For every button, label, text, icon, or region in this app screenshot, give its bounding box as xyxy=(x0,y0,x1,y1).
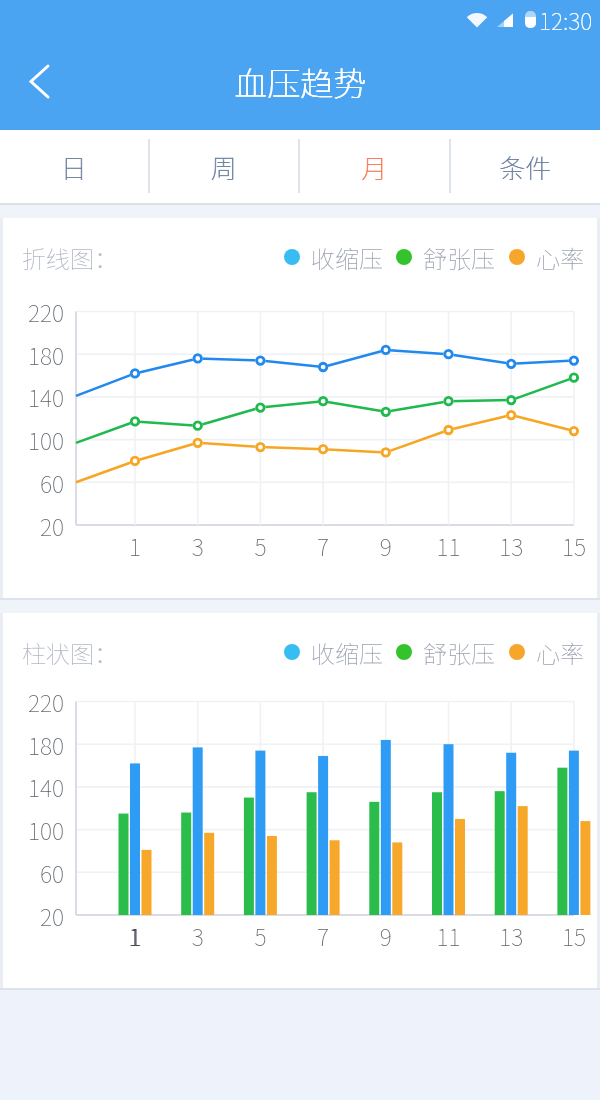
button[interactable] xyxy=(451,130,600,205)
button[interactable] xyxy=(0,40,70,130)
button[interactable] xyxy=(150,130,298,205)
button[interactable] xyxy=(300,130,449,205)
button[interactable] xyxy=(0,130,148,205)
